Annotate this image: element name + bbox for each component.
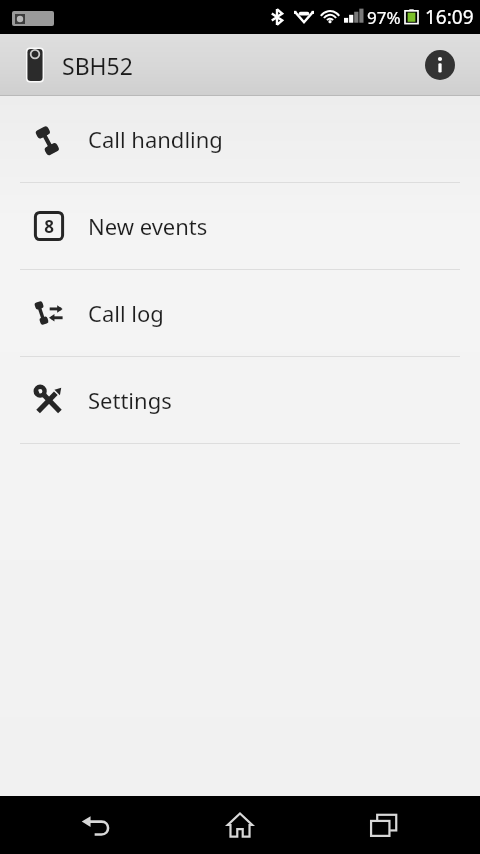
- staticText: Settings: [88, 385, 172, 415]
- button[interactable]: Settings: [0, 357, 480, 443]
- staticText: New events: [88, 211, 208, 241]
- button[interactable]: About: [418, 43, 462, 87]
- button[interactable]: Call handling: [0, 96, 480, 182]
- button[interactable]: Home: [192, 796, 288, 854]
- button[interactable]: Back: [48, 796, 144, 854]
- staticText: 97%: [367, 6, 401, 29]
- staticText: Call handling: [88, 124, 223, 154]
- button[interactable]: 8: [0, 183, 480, 269]
- button[interactable]: Recent apps: [336, 796, 432, 854]
- staticText: Call log: [88, 298, 164, 328]
- button[interactable]: Call log: [0, 270, 480, 356]
- staticText: SBH52: [62, 50, 133, 81]
- staticText: 16:09: [425, 4, 474, 30]
- staticText: 8: [44, 215, 54, 238]
